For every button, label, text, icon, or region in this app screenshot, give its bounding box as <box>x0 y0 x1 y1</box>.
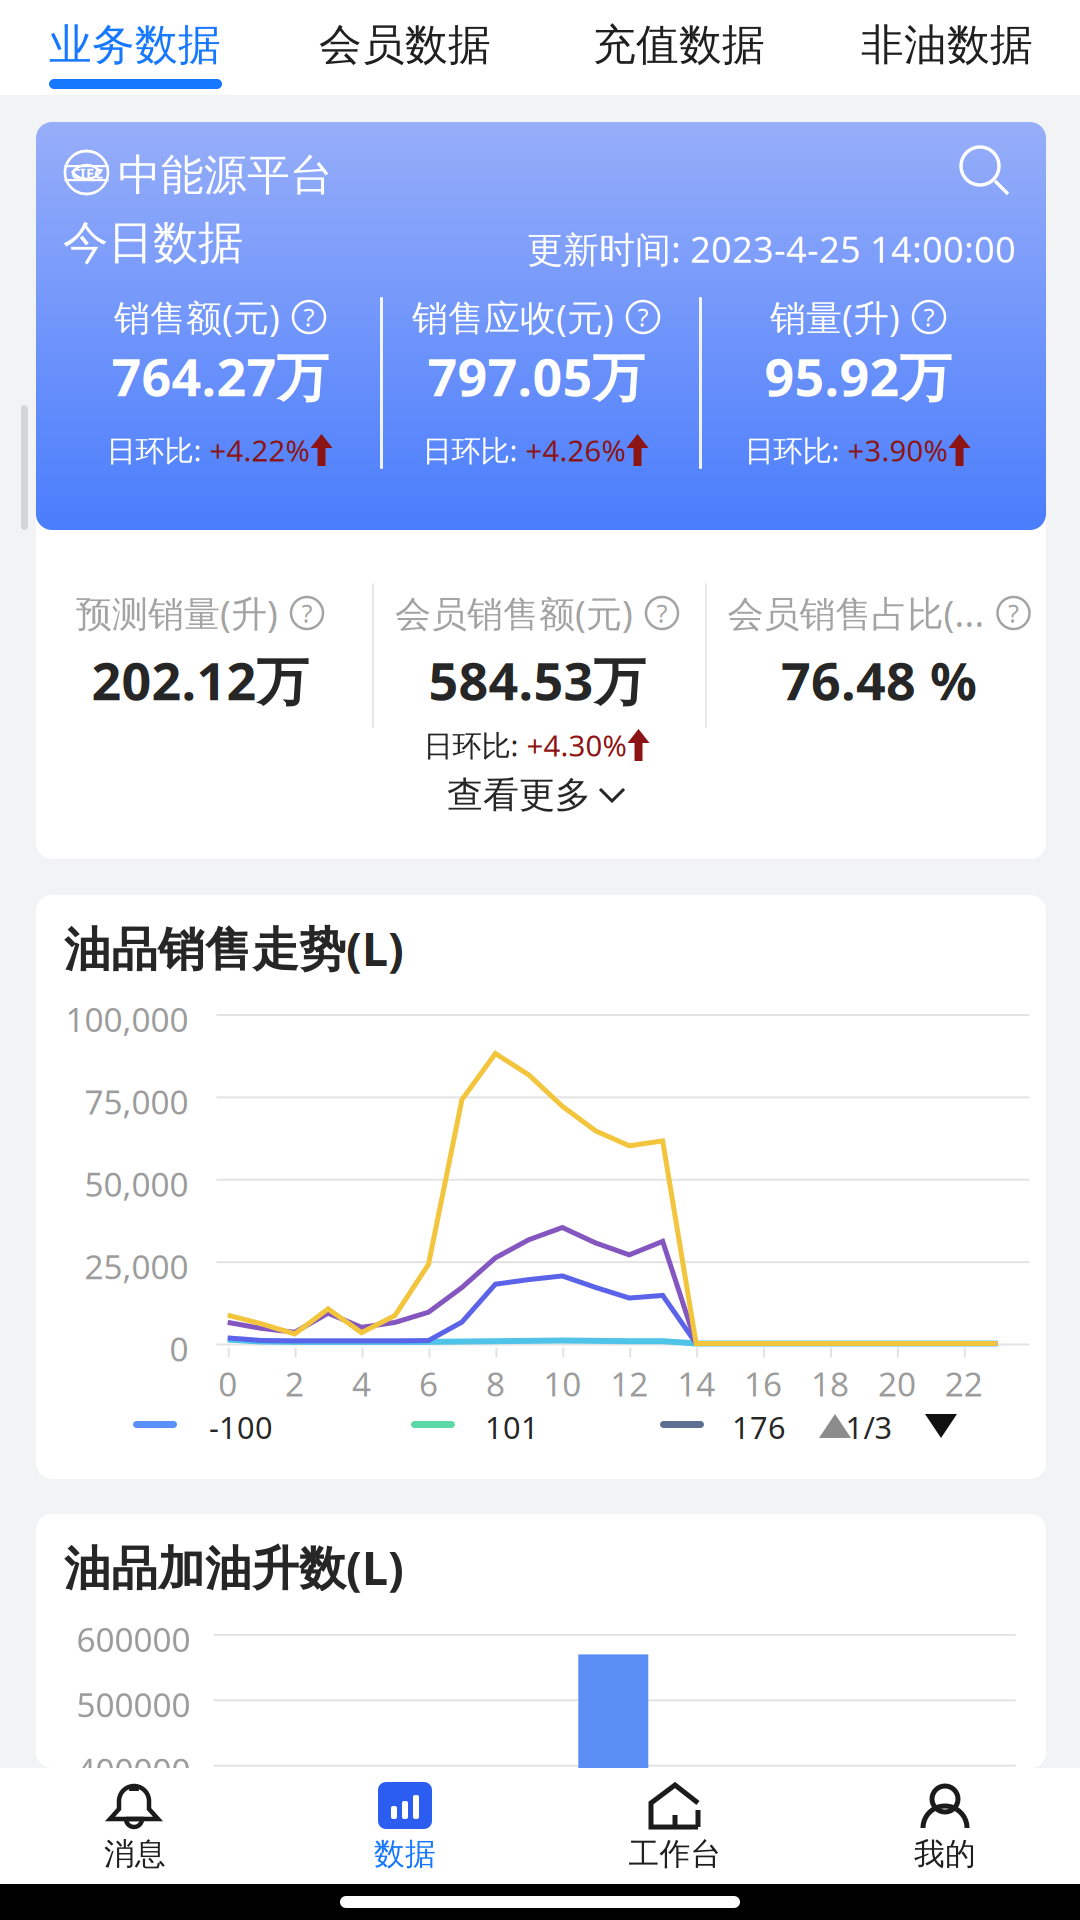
staticText: 消息 <box>104 1835 166 1873</box>
staticText: 764.27万 <box>111 341 328 411</box>
staticText: 8 <box>486 1361 505 1406</box>
staticText: 14 <box>677 1361 715 1406</box>
staticText: 数据 <box>374 1835 436 1873</box>
staticText: 今日数据 <box>63 215 243 271</box>
staticText: 6 <box>419 1361 438 1406</box>
staticText: 充值数据 <box>593 19 765 71</box>
staticText: ? <box>656 596 667 630</box>
staticText: 797.05万 <box>427 341 644 411</box>
button[interactable]: 数据 <box>285 1768 525 1884</box>
button[interactable]: 搜索 <box>958 144 1014 200</box>
staticText: 日环比: <box>423 725 526 764</box>
staticText: 50,000 <box>84 1162 188 1206</box>
button[interactable]: 工作台 <box>555 1768 795 1884</box>
staticText: 500000 <box>76 1682 190 1727</box>
staticText: 销售额(元) <box>114 293 280 341</box>
staticText: 0 <box>218 1361 237 1406</box>
staticText: ? <box>301 596 312 630</box>
staticText: 584.53万 <box>428 645 645 715</box>
staticText: CIEC <box>71 163 103 183</box>
button[interactable]: 查看更多 <box>337 768 737 822</box>
button[interactable]: 消息 <box>15 1768 255 1884</box>
button[interactable]: 非油数据 <box>827 0 1067 95</box>
staticText: 400000 <box>76 1748 190 1792</box>
staticText: +3.90% <box>847 430 947 469</box>
staticText: 1/3 <box>845 1407 892 1447</box>
staticText: 100,000 <box>65 997 188 1041</box>
staticText: 75,000 <box>84 1079 188 1124</box>
staticText: 非油数据 <box>861 19 1033 71</box>
staticText: -100 <box>209 1407 273 1447</box>
staticText: 我的 <box>914 1835 976 1873</box>
staticText: 销售应收(元) <box>412 293 614 341</box>
staticText: 更新时间: 2023-4-25 14:00:00 <box>527 225 1016 273</box>
staticText: 4 <box>352 1361 371 1406</box>
staticText: 会员销售额(元) <box>395 589 633 637</box>
staticText: 工作台 <box>628 1835 721 1873</box>
staticText: 0 <box>169 1326 188 1371</box>
staticText: 16 <box>744 1361 782 1406</box>
staticText: 12 <box>610 1361 648 1406</box>
staticText: 10 <box>543 1361 581 1406</box>
staticText: +4.26% <box>525 430 625 469</box>
staticText: 会员数据 <box>319 19 491 71</box>
staticText: 2 <box>285 1361 304 1406</box>
staticText: 日环比: <box>422 430 525 469</box>
staticText: 查看更多 <box>447 773 591 817</box>
staticText: 20 <box>878 1361 916 1406</box>
staticText: ? <box>303 300 314 334</box>
staticText: 101 <box>485 1407 539 1447</box>
staticText: ? <box>637 300 648 334</box>
staticText: 18 <box>811 1361 849 1406</box>
staticText: 25,000 <box>84 1244 188 1288</box>
button[interactable]: 充值数据 <box>559 0 799 95</box>
staticText: 日环比: <box>106 430 209 469</box>
staticText: 176 <box>732 1407 786 1447</box>
staticText: 销量(升) <box>770 293 900 341</box>
button[interactable]: 我的 <box>825 1768 1065 1884</box>
staticText: +4.30% <box>526 725 626 764</box>
button[interactable]: 业务数据 <box>15 0 255 95</box>
staticText: +4.22% <box>209 430 309 469</box>
staticText: 95.92万 <box>764 341 951 411</box>
staticText: ? <box>923 300 934 334</box>
button[interactable]: 会员数据 <box>285 0 525 95</box>
staticText: ? <box>1008 596 1019 630</box>
staticText: 预测销量(升) <box>76 589 278 637</box>
staticText: 油品加油升数(L) <box>64 1536 404 1598</box>
staticText: 600000 <box>76 1617 190 1661</box>
staticText: 76.48 % <box>781 645 977 715</box>
staticText: 中能源平台 <box>118 149 333 201</box>
staticText: 日环比: <box>744 430 847 469</box>
staticText: 202.12万 <box>91 645 308 715</box>
staticText: 业务数据 <box>49 19 221 71</box>
staticText: 22 <box>945 1361 983 1406</box>
staticText: 油品销售走势(L) <box>64 917 404 979</box>
staticText: 会员销售占比(... <box>727 589 984 637</box>
